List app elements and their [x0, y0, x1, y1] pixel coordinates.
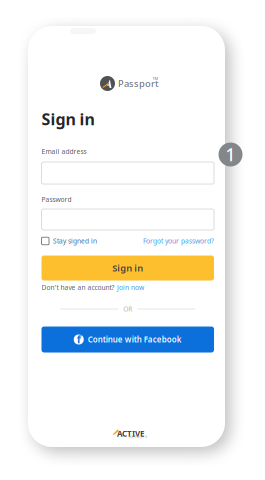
button[interactable]: Join now — [117, 283, 144, 292]
button[interactable]: Stay signed in — [41, 237, 97, 245]
staticText: N E T W O R K — [129, 435, 147, 439]
staticText: f — [77, 332, 81, 346]
staticText: Continue with Facebook — [88, 334, 182, 345]
staticText: OR — [123, 305, 132, 313]
staticText: 1 — [225, 143, 235, 166]
button[interactable]: f — [41, 326, 214, 352]
staticText: Passport — [118, 77, 159, 90]
staticText: Email address — [41, 147, 86, 156]
staticText: Stay signed in — [53, 237, 97, 245]
staticText: Join now — [117, 283, 144, 292]
staticText: Password — [41, 195, 71, 204]
button[interactable]: Sign in — [41, 255, 214, 280]
staticText: Don't have an account? — [41, 283, 114, 292]
staticText: Forgot your password? — [143, 237, 214, 245]
staticText: Sign in — [41, 108, 94, 130]
staticText: ACTIVE — [117, 428, 144, 439]
staticText: Sign in — [112, 262, 143, 274]
staticText: TM — [152, 76, 158, 81]
button[interactable]: Forgot your password? — [143, 237, 214, 245]
